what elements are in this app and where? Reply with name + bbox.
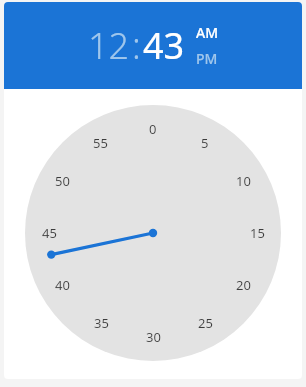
staticText: 20: [236, 276, 251, 294]
staticText: 25: [198, 314, 213, 332]
staticText: 30: [146, 328, 161, 346]
staticText: 10: [236, 172, 251, 190]
staticText: 0: [149, 120, 157, 138]
staticText: 50: [55, 172, 70, 190]
staticText: 35: [94, 314, 109, 332]
staticText: AM: [196, 23, 219, 42]
staticText: 15: [250, 224, 265, 242]
staticText: 55: [93, 134, 108, 152]
staticText: :: [132, 21, 141, 70]
staticText: 45: [42, 224, 57, 242]
staticText: PM: [196, 49, 218, 68]
button[interactable]: 12: [88, 21, 185, 70]
button[interactable]: Minute dial, 43 minutes: [4, 89, 302, 379]
button[interactable]: PM: [196, 49, 218, 68]
staticText: 12: [88, 21, 130, 70]
staticText: 43: [143, 21, 185, 70]
staticText: 5: [201, 134, 209, 152]
staticText: 40: [55, 276, 70, 294]
button[interactable]: AM: [196, 23, 219, 42]
